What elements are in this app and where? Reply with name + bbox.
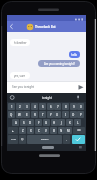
button[interactable]: See you tonight [7,81,86,93]
button[interactable]: D [27,119,34,126]
button[interactable]: Throwback Bot [7,21,86,32]
staticText: ☺ [21,138,24,141]
button[interactable]: O [70,111,77,118]
staticText: ⌫ [77,129,81,132]
staticText: tonight [42,96,52,100]
staticText: H [53,121,56,125]
staticText: 0 [80,105,82,109]
staticText: Q [10,113,13,117]
button[interactable]: 6 [47,103,54,110]
button[interactable]: Are you coming tonight? [38,60,80,67]
button[interactable]: W [16,111,23,118]
button[interactable]: Z [19,127,26,134]
staticText: P [80,113,82,117]
staticText: A [15,121,17,125]
staticText: 3 [26,105,28,109]
staticText: 2 [19,105,21,109]
button[interactable]: E [23,111,30,118]
staticText: ?123 [11,138,16,141]
staticText: 5 [42,105,44,109]
button[interactable]: 3 [23,103,30,110]
staticText: 4 [34,105,36,109]
button[interactable]: H [51,119,58,126]
staticText: Are you coming tonight? [44,62,75,66]
staticText: K [69,121,71,125]
button[interactable]: ☺ [19,135,26,144]
staticText: See you tonight [12,85,35,89]
staticText: L [77,121,79,125]
button[interactable]: R [31,111,38,118]
button[interactable]: ⌫ [73,127,85,134]
button[interactable]: . [63,135,70,144]
button[interactable]: 1 [8,103,15,110]
staticText: 7 [57,105,59,109]
button[interactable]: ?123 [8,135,18,144]
staticText: Y [50,113,52,117]
staticText: S [23,121,25,125]
staticText: J [61,121,62,125]
staticText: U [56,113,59,117]
staticText: R [34,113,36,117]
button[interactable]: N [58,127,65,134]
staticText: hello [71,53,78,57]
button[interactable]: hi brother [10,39,30,46]
staticText: B [53,129,55,133]
button[interactable]: yes, sure [10,72,30,79]
button[interactable]: V [42,127,49,134]
button[interactable]: ▴ [8,127,18,134]
button[interactable]: hello [69,51,80,58]
staticText: hi brother [14,41,27,45]
staticText: E [26,113,28,117]
staticText: M [67,129,70,133]
staticText: ▴ [12,129,14,132]
button[interactable]: J [58,119,65,126]
staticText: T [42,113,44,117]
staticText: G [45,121,48,125]
staticText: . [66,138,67,142]
button[interactable]: A [12,119,19,126]
staticText: X [30,129,32,133]
staticText: 6 [50,105,52,109]
button[interactable]: 7 [54,103,61,110]
staticText: I [65,113,66,117]
button[interactable]: 5 [39,103,46,110]
button[interactable]: K [66,119,73,126]
staticText: O [72,113,75,117]
staticText: 8 [65,105,67,109]
staticText: V [45,129,47,133]
staticText: N [60,129,63,133]
button[interactable]: 0 [77,103,84,110]
button[interactable] [72,135,85,144]
button[interactable]: T [39,111,46,118]
button[interactable]: I [62,111,69,118]
staticText: 9 [73,105,75,109]
staticText: D [29,121,32,125]
staticText: English [41,138,49,141]
button[interactable]: Y [47,111,54,118]
button[interactable]: X [27,127,34,134]
staticText: C [38,129,40,133]
button[interactable]: U [54,111,61,118]
button[interactable]: 2 [16,103,23,110]
button[interactable]: P [77,111,84,118]
staticText: 1 [11,105,13,109]
button[interactable]: S [20,119,27,126]
staticText: Throwback Bot [35,25,56,29]
button[interactable]: 4 [31,103,38,110]
button[interactable]: Q [8,111,15,118]
button[interactable]: 9 [70,103,77,110]
button[interactable]: L [74,119,81,126]
staticText: yes, sure [14,74,26,78]
staticText: F [38,121,40,125]
staticText: Z [22,129,24,133]
button[interactable]: B [50,127,57,134]
button[interactable]: 8 [62,103,69,110]
button[interactable]: G [43,119,50,126]
button[interactable]: English [27,135,62,144]
button[interactable] [42,146,54,149]
staticText: W [18,113,21,117]
button[interactable]: M [65,127,72,134]
button[interactable]: C [35,127,42,134]
button[interactable]: F [35,119,42,126]
